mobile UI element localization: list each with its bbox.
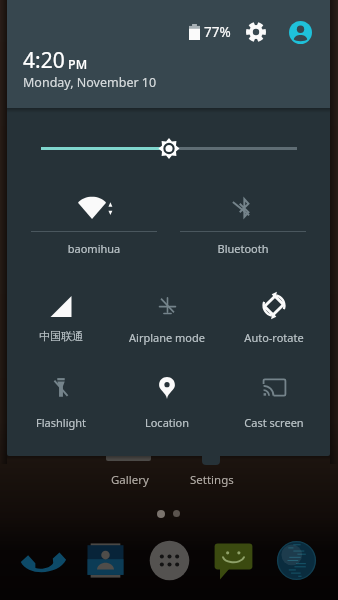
button[interactable]: Phone (15, 529, 69, 591)
staticText: Bluetooth (162, 241, 324, 256)
button[interactable] (7, 361, 115, 429)
staticText: Settings (190, 472, 234, 488)
button[interactable]: Contacts (78, 529, 132, 591)
button[interactable]: Browser (269, 529, 323, 591)
button[interactable]: User profile (287, 19, 313, 45)
button[interactable] (220, 278, 328, 347)
staticText: Monday, November 10 (23, 74, 157, 91)
staticText: Cast screen (220, 415, 328, 430)
staticText: Auto-rotate (220, 330, 328, 345)
button[interactable]: Expand quick settings (202, 454, 220, 465)
button[interactable] (220, 362, 328, 427)
staticText: 77% (204, 23, 231, 41)
staticText: Location (113, 415, 221, 430)
button[interactable] (113, 361, 221, 429)
staticText: baomihua (13, 241, 175, 256)
button[interactable]: Settings (243, 19, 269, 45)
staticText: Airplane mode (113, 330, 221, 345)
button[interactable] (162, 182, 324, 248)
staticText: Flashlight (7, 415, 115, 430)
staticText: Gallery (111, 472, 149, 488)
staticText: 4:20 (23, 46, 65, 75)
button[interactable] (13, 181, 175, 249)
button[interactable]: Apps (142, 529, 196, 591)
button[interactable]: Messaging (206, 529, 260, 591)
button[interactable] (113, 280, 221, 345)
staticText: 中国联通 (7, 329, 115, 343)
button[interactable] (7, 280, 115, 347)
staticText: PM (68, 56, 88, 73)
